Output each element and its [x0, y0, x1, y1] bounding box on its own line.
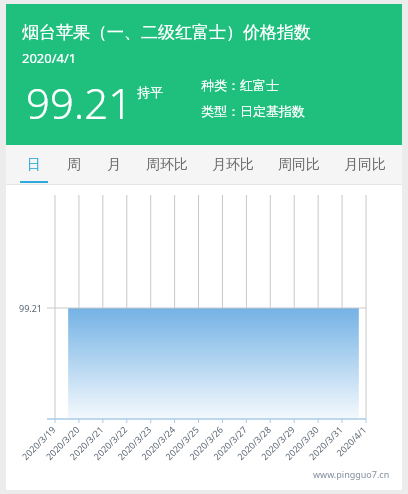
- staticText: 持平: [137, 84, 163, 100]
- staticText: 周: [67, 156, 81, 174]
- button[interactable]: 周同比: [266, 145, 332, 185]
- staticText: 周环比: [146, 156, 188, 174]
- staticText: 月环比: [212, 156, 254, 174]
- staticText: 周同比: [278, 156, 320, 174]
- button[interactable]: 日: [14, 145, 54, 185]
- staticText: 烟台苹果（一、二级红富士）价格指数: [22, 22, 311, 43]
- staticText: 月: [107, 156, 121, 174]
- staticText: 99.21: [26, 74, 133, 131]
- button[interactable]: 月环比: [200, 145, 266, 185]
- staticText: 种类：红富士: [201, 77, 279, 93]
- button[interactable]: 周: [54, 145, 94, 185]
- staticText: 类型：日定基指数: [201, 103, 305, 119]
- staticText: 月同比: [344, 156, 386, 174]
- staticText: 2020/4/1: [22, 49, 77, 67]
- button[interactable]: 月同比: [332, 145, 398, 185]
- staticText: 日: [27, 156, 41, 174]
- button[interactable]: 周环比: [134, 145, 200, 185]
- button[interactable]: 月: [94, 145, 134, 185]
